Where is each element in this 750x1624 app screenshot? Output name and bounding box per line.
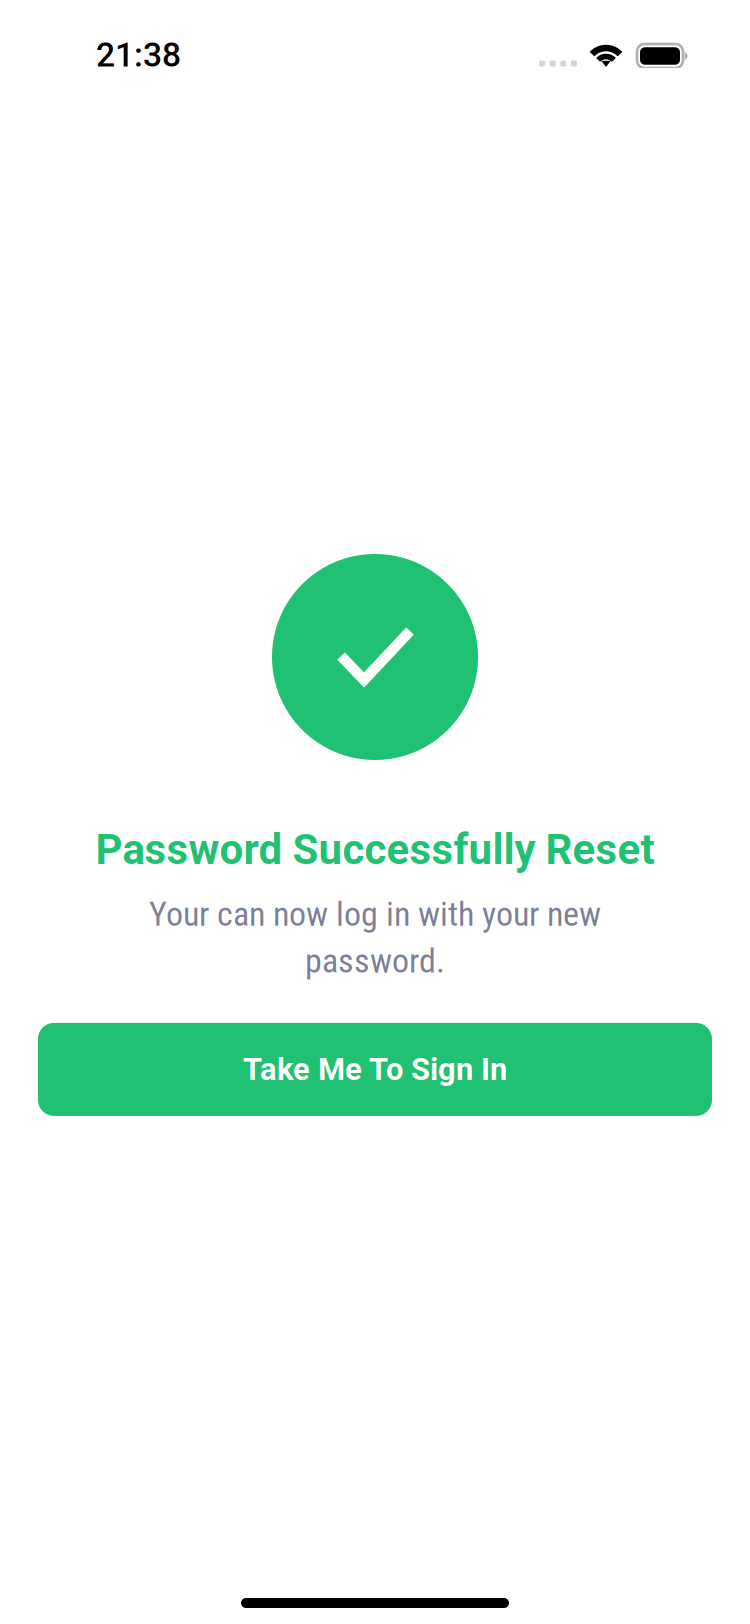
staticText: Password Successfully Reset [95,825,654,874]
button[interactable]: Take Me To Sign In [38,1023,712,1116]
staticText: Take Me To Sign In [243,1051,507,1087]
staticText: password. [305,941,445,981]
staticText: 21:38 [96,35,181,75]
staticText: Your can now log in with your new [149,894,601,934]
